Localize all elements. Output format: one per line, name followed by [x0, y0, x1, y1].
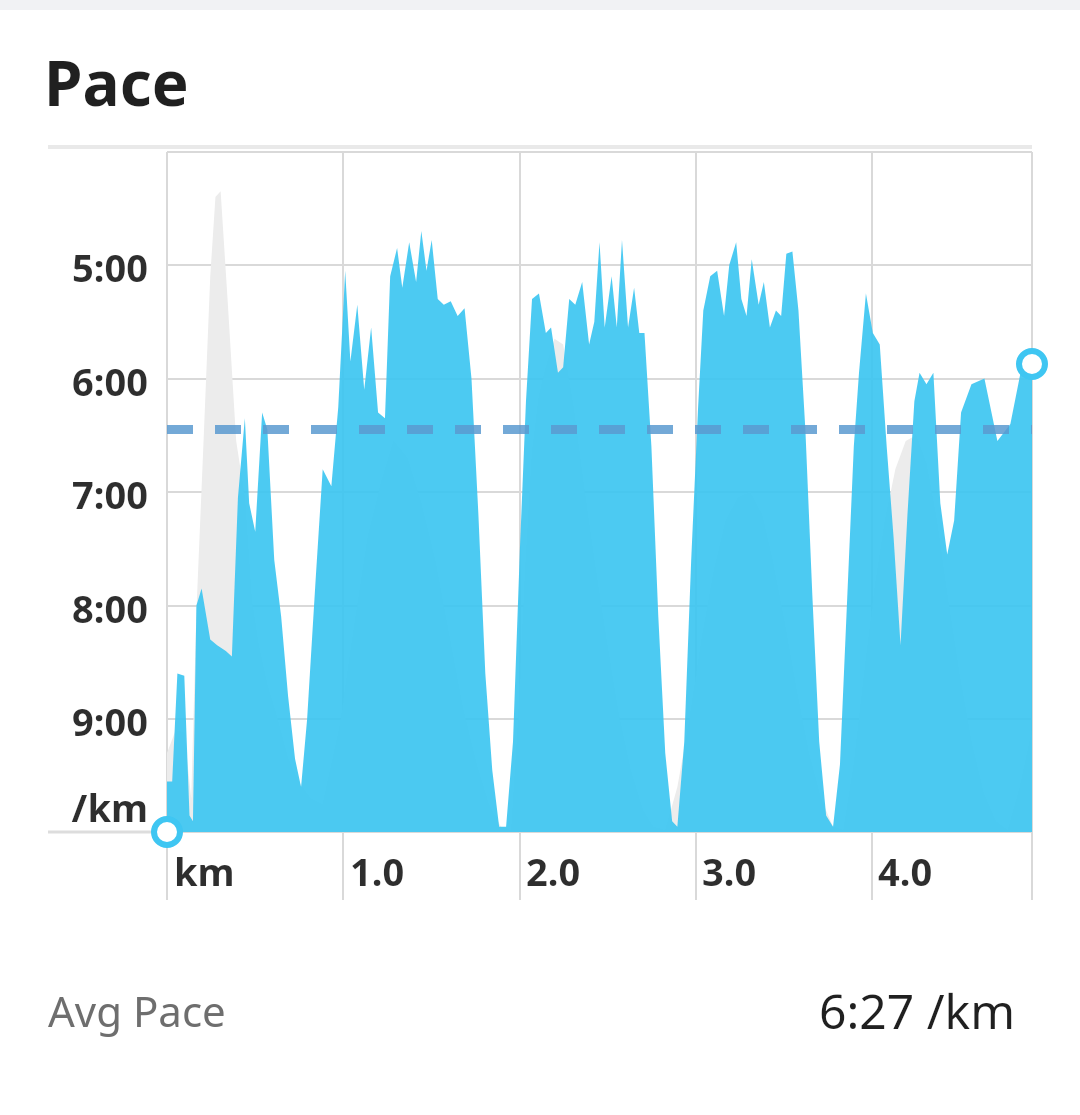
staticText: 3.0 [702, 845, 757, 897]
button[interactable]: Pace chart [0, 140, 1080, 900]
staticText: 4.0 [878, 845, 933, 897]
button[interactable]: Avg Pace [0, 960, 1080, 1060]
staticText: 7:00 [38, 468, 148, 520]
staticText: 2.0 [526, 845, 581, 897]
staticText: 8:00 [38, 582, 148, 634]
staticText: 5:00 [38, 241, 148, 293]
staticText: 9:00 [38, 695, 148, 747]
staticText: Avg Pace [48, 982, 226, 1039]
staticText: Pace [44, 40, 189, 124]
staticText: /km [38, 781, 148, 833]
staticText: km [174, 845, 235, 897]
staticText: 1.0 [350, 845, 405, 897]
staticText: 6:00 [38, 355, 148, 407]
staticText: 6:27 /km [819, 978, 1016, 1043]
